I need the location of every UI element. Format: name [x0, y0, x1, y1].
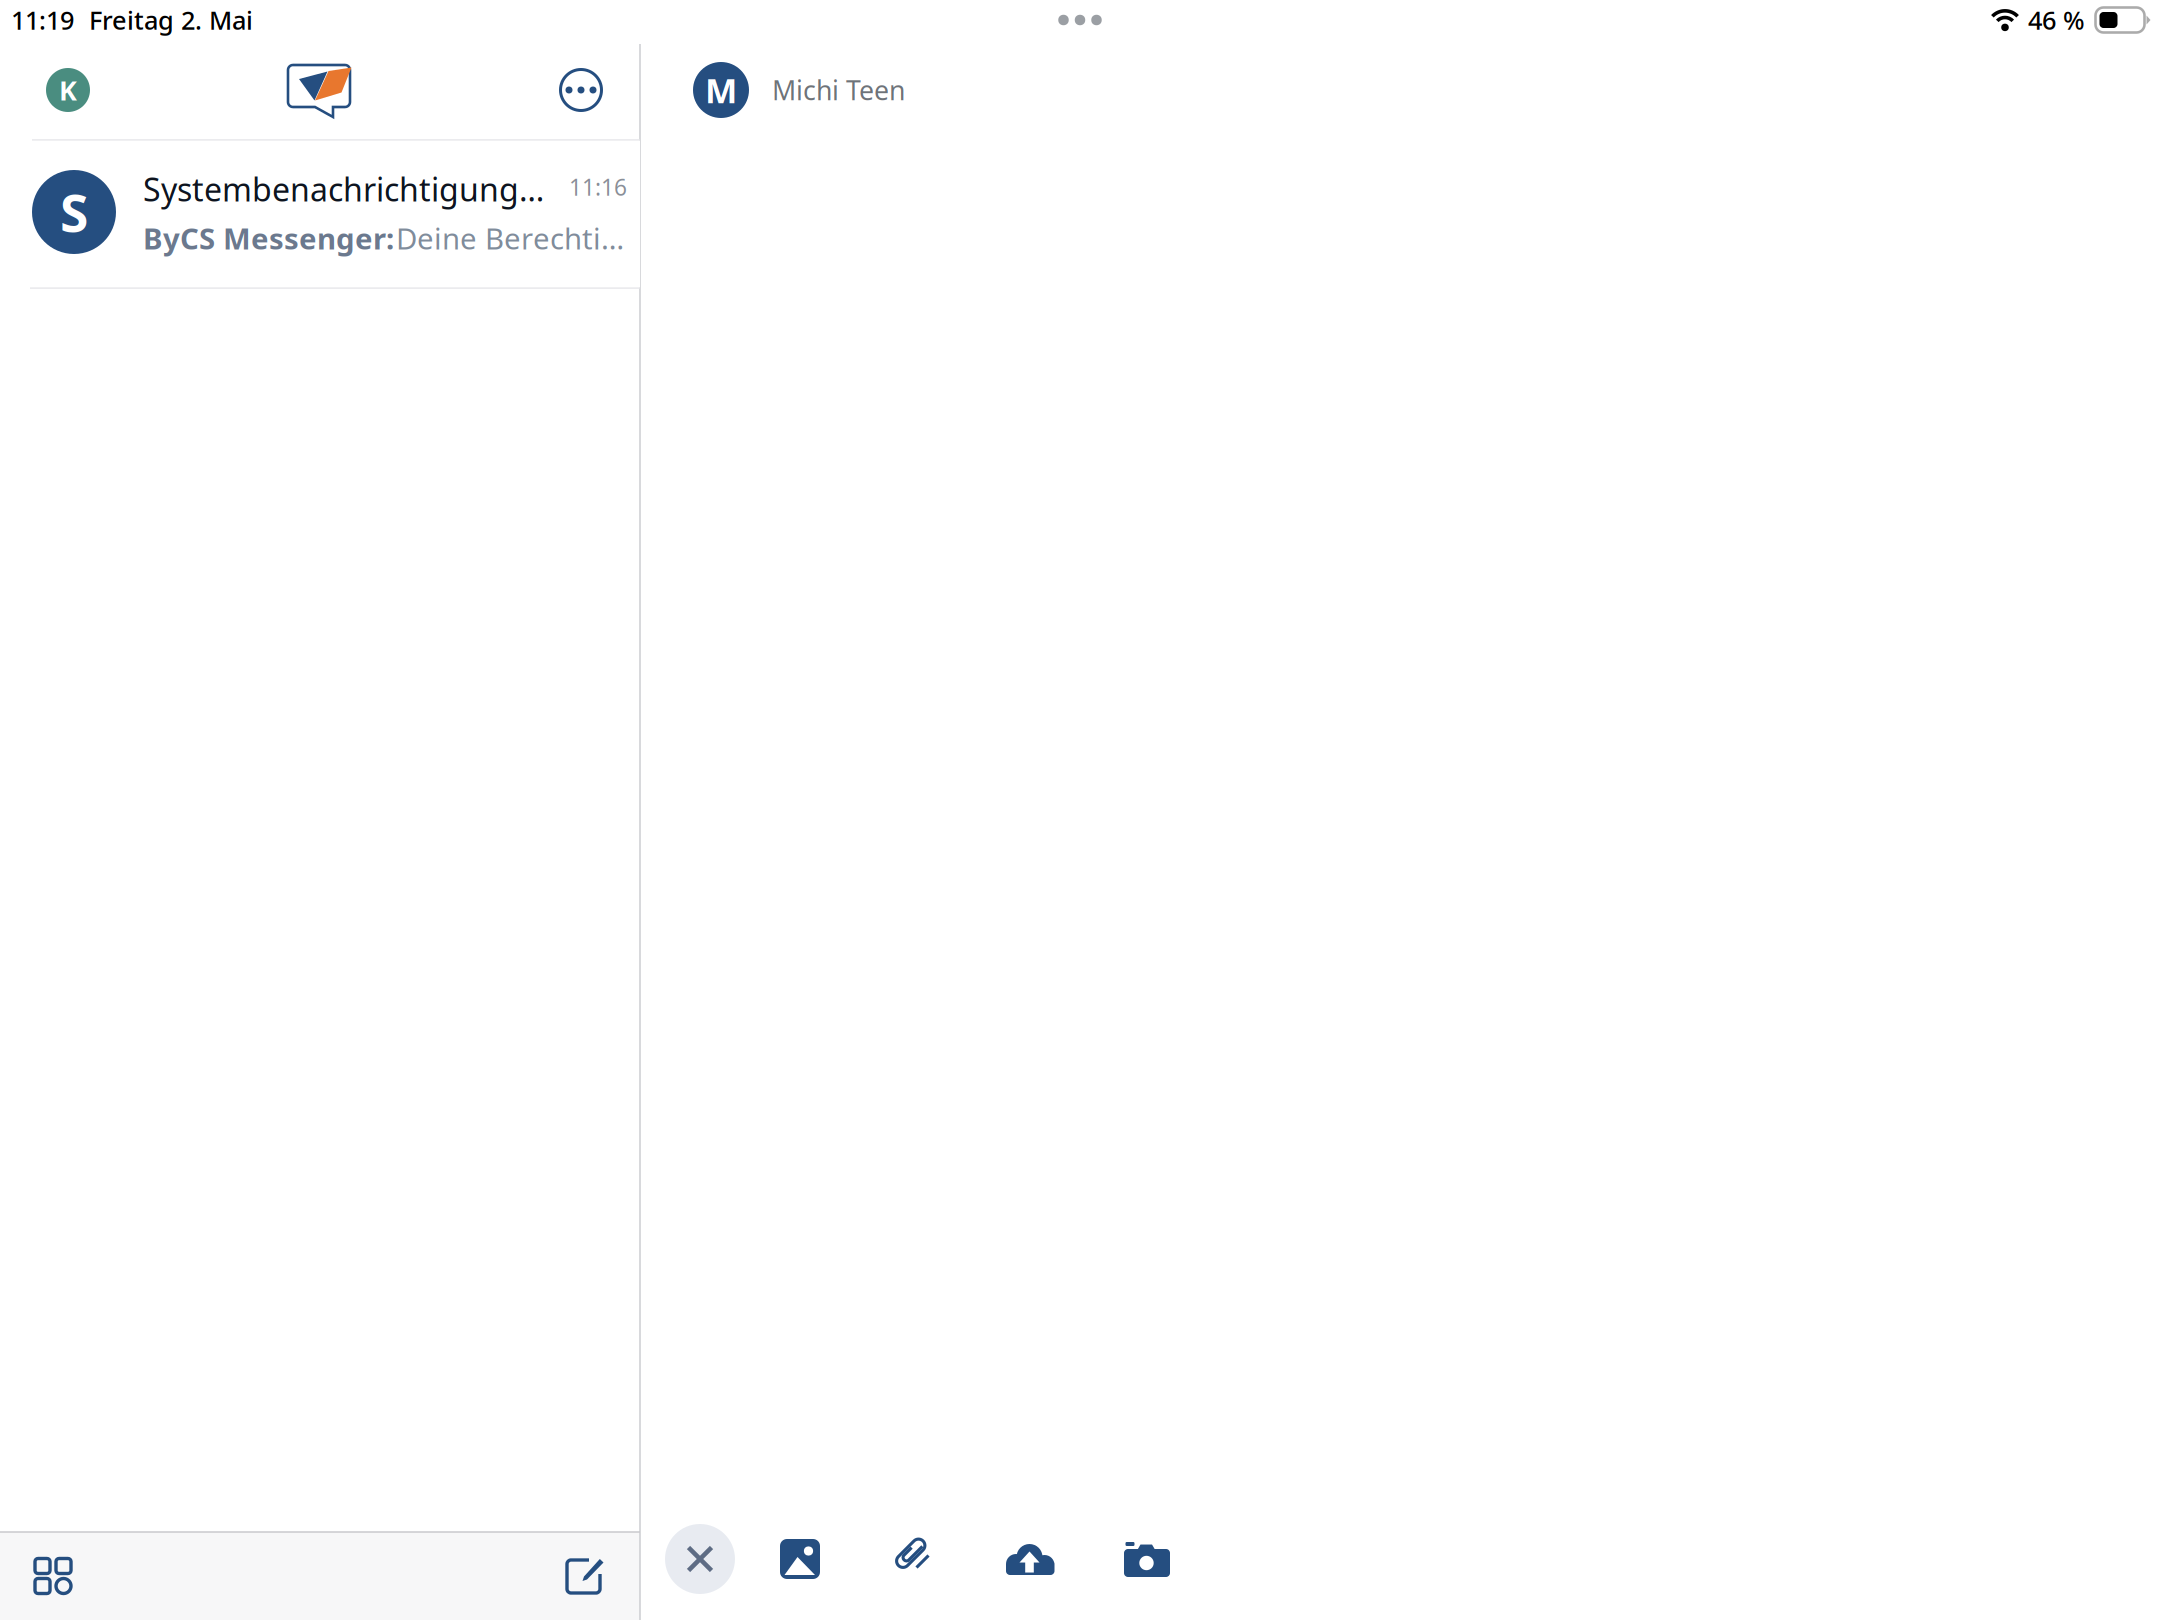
staticText: S — [60, 177, 88, 247]
staticText: Systembenachrichtigung… — [143, 167, 544, 211]
staticText: Freitag 2. Mai — [89, 3, 253, 37]
button[interactable]: Anhang — [868, 1513, 958, 1603]
button[interactable]: Schließen — [655, 1514, 745, 1604]
button[interactable]: Hochladen — [985, 1514, 1075, 1604]
staticText: 11:19 — [11, 3, 74, 37]
button[interactable]: Apps — [15, 1538, 91, 1614]
staticText: 46 % — [2028, 3, 2085, 37]
button[interactable]: Foto — [755, 1514, 845, 1604]
staticText: Michi Teen — [772, 72, 905, 108]
button[interactable] — [0, 141, 640, 287]
button[interactable]: Neue Nachricht — [547, 1539, 623, 1615]
staticText: K — [59, 72, 77, 108]
staticText: M — [705, 67, 737, 113]
button[interactable]: Kamera — [1102, 1514, 1192, 1604]
button[interactable]: Mehr — [543, 52, 619, 128]
staticText: 11:16 — [569, 172, 627, 202]
staticText: Deine Berechti… — [396, 218, 624, 258]
button[interactable]: Profil — [30, 52, 106, 128]
staticText: ByCS Messenger: — [143, 218, 394, 258]
